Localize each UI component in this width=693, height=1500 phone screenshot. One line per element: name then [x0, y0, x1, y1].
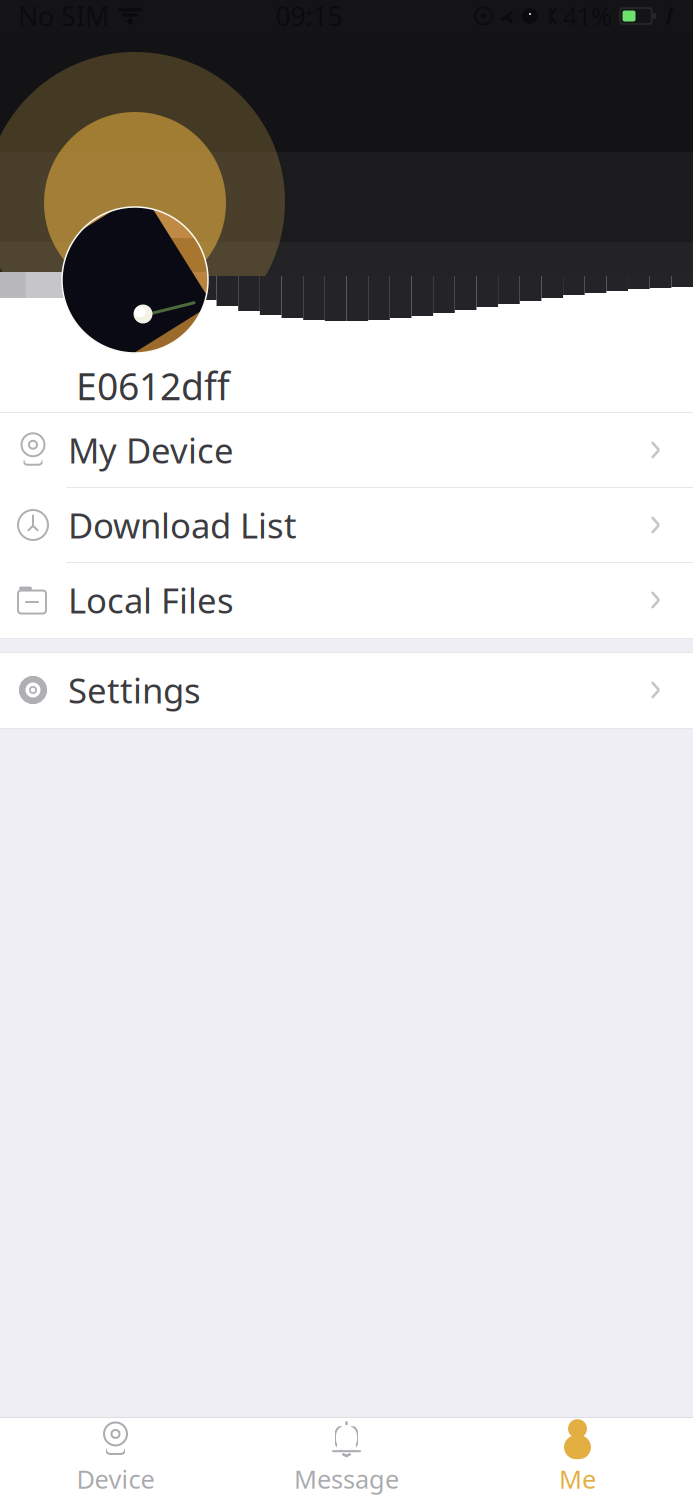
staticText: Local Files — [68, 577, 234, 623]
staticText: Message — [294, 1462, 399, 1496]
button[interactable]: Device — [0, 1418, 231, 1500]
button[interactable]: Me — [462, 1418, 693, 1500]
staticText: Me — [559, 1462, 596, 1496]
button[interactable]: My Device — [0, 413, 693, 488]
button[interactable]: Settings — [0, 653, 693, 728]
staticText: My Device — [68, 427, 234, 473]
button[interactable]: Local Files — [0, 563, 693, 638]
staticText: Download List — [68, 502, 297, 548]
staticText: Settings — [68, 667, 201, 713]
staticText: E0612dff — [76, 361, 230, 411]
button[interactable]: Download List — [0, 488, 693, 563]
staticText: No SIM — [18, 0, 109, 34]
button[interactable]: Message — [231, 1418, 462, 1500]
staticText: Device — [76, 1462, 154, 1496]
staticText: 09:15 — [275, 0, 342, 34]
